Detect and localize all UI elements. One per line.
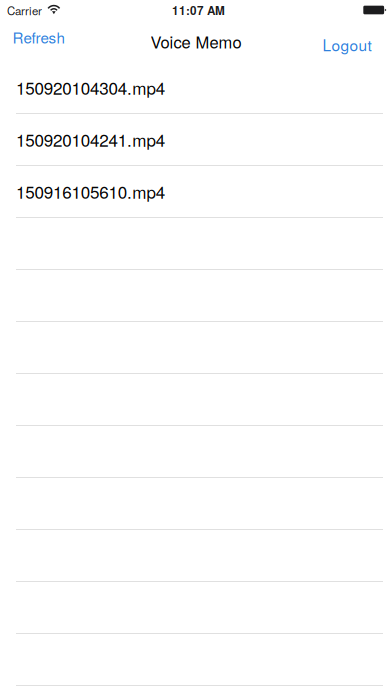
button[interactable]: 150920104304.mp4 xyxy=(0,62,392,114)
staticText: 150920104304.mp4 xyxy=(16,75,165,100)
staticText: 150916105610.mp4 xyxy=(16,179,165,204)
staticText: 11:07 AM xyxy=(172,2,225,19)
button[interactable]: Refresh xyxy=(0,20,86,62)
staticText: Voice Memo xyxy=(150,30,241,53)
staticText: 150920104241.mp4 xyxy=(16,127,165,152)
button[interactable]: 150920104241.mp4 xyxy=(0,114,392,166)
button[interactable]: 150916105610.mp4 xyxy=(0,166,392,218)
staticText: Refresh xyxy=(12,26,64,48)
staticText: Carrier xyxy=(7,2,42,18)
button[interactable]: Logout xyxy=(308,16,392,65)
staticText: Logout xyxy=(322,33,371,55)
